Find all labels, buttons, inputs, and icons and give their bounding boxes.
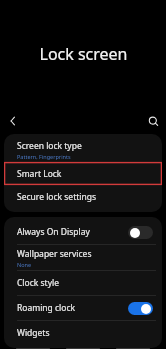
button[interactable]: Search	[140, 108, 166, 134]
button[interactable]: Back	[0, 108, 26, 134]
button[interactable]: Roaming clock	[4, 296, 162, 320]
staticText: Clock style	[17, 277, 59, 289]
staticText: Wallpaper services	[17, 248, 92, 260]
staticText: Smart Lock	[17, 168, 62, 180]
staticText: Pattern, Fingerprints	[17, 153, 71, 160]
button[interactable]: Always On Display	[4, 220, 162, 244]
button[interactable]: Smart Lock	[4, 162, 162, 185]
staticText: Secure lock settings	[17, 191, 97, 203]
staticText: None	[17, 261, 32, 268]
button[interactable]: Secure lock settings	[4, 185, 162, 209]
staticText: Always On Display	[17, 226, 90, 238]
button[interactable]: Clock style	[4, 271, 162, 295]
staticText: Lock screen	[39, 43, 128, 65]
button[interactable]: Screen lock type	[4, 137, 162, 162]
button[interactable]: Toggle off	[128, 226, 153, 239]
button[interactable]: Widgets	[4, 321, 162, 345]
button[interactable]: Toggle on	[128, 302, 153, 315]
staticText: Widgets	[17, 327, 50, 339]
staticText: Roaming clock	[17, 302, 76, 314]
button[interactable]: Wallpaper services	[4, 245, 162, 270]
staticText: Screen lock type	[17, 140, 82, 152]
